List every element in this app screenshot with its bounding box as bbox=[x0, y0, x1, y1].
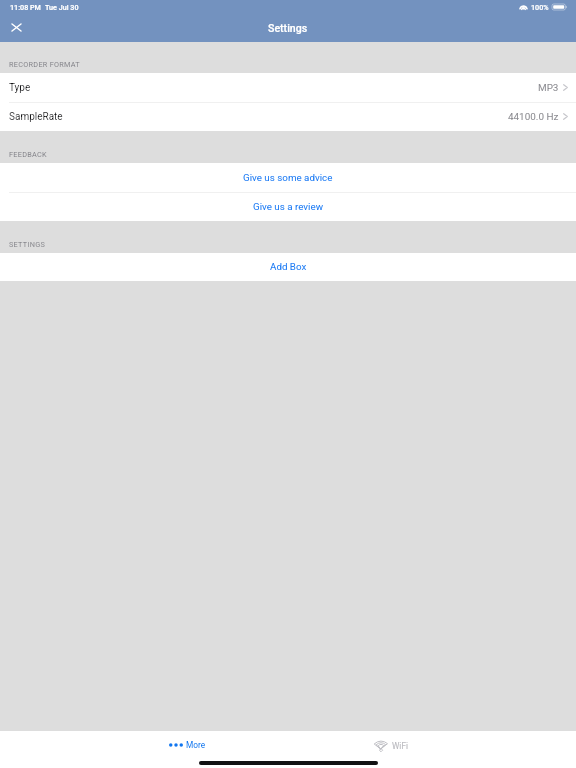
staticText: Give us some advice bbox=[243, 172, 333, 183]
button[interactable]: Give us a review bbox=[0, 192, 576, 221]
staticText: RECORDER FORMAT bbox=[9, 60, 80, 69]
staticText: SampleRate bbox=[9, 111, 63, 123]
staticText: 100% bbox=[531, 3, 549, 11]
staticText: Type bbox=[9, 82, 31, 94]
button[interactable]: Close bbox=[0, 16, 32, 38]
staticText: WiFi bbox=[392, 741, 408, 751]
staticText: FEEDBACK bbox=[9, 150, 47, 159]
staticText: Tue Jul 30 bbox=[45, 3, 79, 11]
button[interactable]: SampleRate bbox=[0, 102, 576, 131]
staticText: Add Box bbox=[270, 261, 307, 272]
staticText: MP3 bbox=[538, 82, 559, 94]
staticText: 44100.0 Hz bbox=[508, 111, 559, 123]
staticText: More bbox=[186, 740, 206, 750]
button[interactable]: WiFi bbox=[374, 740, 408, 751]
button[interactable]: Type bbox=[0, 73, 576, 102]
button[interactable]: Add Box bbox=[0, 253, 576, 281]
button[interactable]: Give us some advice bbox=[0, 163, 576, 192]
staticText: Give us a review bbox=[253, 201, 324, 212]
staticText: 11:08 PM bbox=[10, 3, 41, 11]
staticText: Settings bbox=[268, 22, 308, 34]
staticText: SETTINGS bbox=[9, 240, 46, 249]
button[interactable]: More bbox=[169, 740, 206, 750]
